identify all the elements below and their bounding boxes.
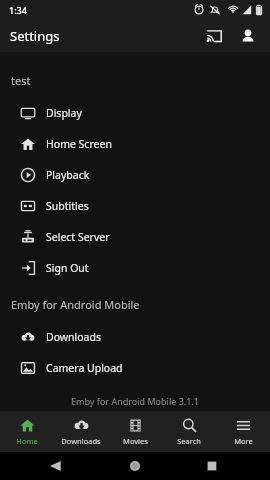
- staticText: Select Server: [46, 230, 110, 244]
- button[interactable]: Cast: [198, 20, 230, 52]
- button[interactable]: Select Server: [0, 221, 270, 252]
- staticText: Display: [46, 106, 82, 120]
- staticText: Emby for Android Mobile: [11, 297, 140, 312]
- staticText: Sign Out: [46, 261, 89, 275]
- staticText: Search: [177, 436, 201, 446]
- button[interactable]: Sign Out: [0, 252, 270, 283]
- staticText: test: [11, 73, 31, 88]
- staticText: More: [234, 436, 253, 446]
- button[interactable]: Account: [232, 20, 264, 52]
- button[interactable]: Playback: [0, 159, 270, 190]
- staticText: Movies: [123, 436, 148, 446]
- button[interactable]: Display: [0, 97, 270, 128]
- staticText: 1:34: [9, 4, 27, 16]
- button[interactable]: Downloads: [54, 411, 108, 452]
- staticText: Home: [16, 436, 38, 446]
- staticText: Settings: [10, 27, 60, 45]
- staticText: Playback: [46, 168, 90, 182]
- staticText: Subtitles: [46, 199, 89, 213]
- staticText: Downloads: [46, 330, 101, 344]
- button[interactable]: Downloads: [0, 321, 270, 352]
- button[interactable]: Home: [0, 411, 54, 452]
- staticText: Downloads: [61, 436, 101, 446]
- button[interactable]: Search: [162, 411, 216, 452]
- button[interactable]: More: [216, 411, 270, 452]
- staticText: Camera Upload: [46, 361, 123, 375]
- button[interactable]: Home Screen: [0, 128, 270, 159]
- staticText: Home Screen: [46, 137, 112, 151]
- button[interactable]: Camera Upload: [0, 352, 270, 383]
- staticText: Emby for Android Mobile 3.1.1: [0, 395, 270, 407]
- button[interactable]: Movies: [108, 411, 162, 452]
- button[interactable]: Subtitles: [0, 190, 270, 221]
